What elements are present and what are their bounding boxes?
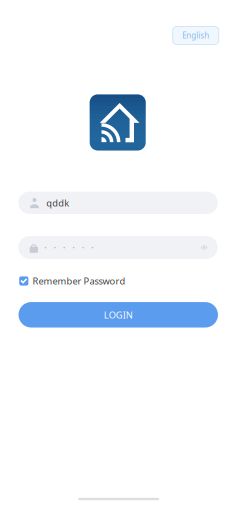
button[interactable]: Show password [193, 236, 215, 258]
staticText: Remember Password [33, 275, 126, 287]
staticText: qddk [46, 197, 69, 209]
staticText: LOGIN [104, 309, 133, 321]
staticText: English [182, 30, 209, 41]
button[interactable]: English [173, 26, 219, 44]
button[interactable]: Remember Password [25, 274, 145, 288]
button[interactable]: LOGIN [18, 302, 218, 328]
